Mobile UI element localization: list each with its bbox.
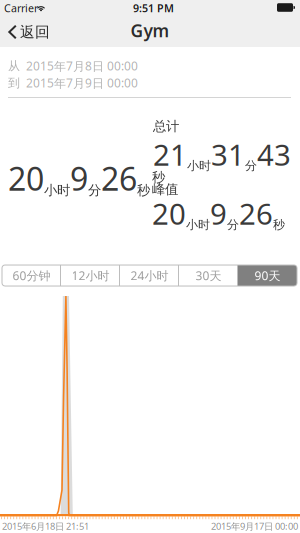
staticText: 峰值 <box>152 181 178 197</box>
staticText: 从 <box>8 59 20 73</box>
staticText: 43 <box>257 135 291 174</box>
staticText: 小时 <box>44 182 70 198</box>
staticText: 秒 <box>152 169 165 185</box>
button[interactable]: 24小时 <box>120 265 179 286</box>
staticText: 小时 <box>186 217 210 232</box>
staticText: 21 <box>153 135 187 174</box>
staticText: 返回 <box>20 23 50 41</box>
button[interactable]: 90天 <box>238 265 297 286</box>
staticText: Gym <box>130 19 169 42</box>
staticText: 秒 <box>137 182 150 198</box>
staticText: 总计 <box>153 118 179 134</box>
button[interactable]: 返回 <box>2 19 60 45</box>
staticText: 分 <box>245 158 257 173</box>
staticText: 20 <box>152 194 186 233</box>
staticText: 30天 <box>195 267 221 283</box>
button[interactable]: 30天 <box>179 265 238 286</box>
staticText: 2015年6月18日 21:51 <box>2 520 89 532</box>
staticText: 小时 <box>187 158 211 173</box>
staticText: 9 <box>210 194 227 233</box>
button[interactable]: 12小时 <box>61 265 120 286</box>
staticText: 到 <box>8 76 20 90</box>
button[interactable]: 60分钟 <box>2 265 61 286</box>
staticText: 分 <box>88 182 101 198</box>
staticText: 24小时 <box>130 267 168 283</box>
staticText: 2015年7月9日 00:00 <box>26 75 138 91</box>
staticText: 60分钟 <box>12 267 50 283</box>
staticText: 分 <box>227 217 239 232</box>
staticText: 2015年9月17日 00:00 <box>211 520 298 532</box>
staticText: Carrier <box>4 1 38 15</box>
staticText: 秒 <box>273 217 285 232</box>
staticText: 31 <box>211 135 245 174</box>
staticText: 90天 <box>254 267 280 283</box>
staticText: 2015年7月8日 00:00 <box>26 58 138 74</box>
staticText: 26 <box>239 194 273 233</box>
staticText: 12小时 <box>71 267 109 283</box>
staticText: 20 <box>8 157 44 199</box>
staticText: 26 <box>101 157 137 199</box>
staticText: 9 <box>70 157 88 199</box>
staticText: 9:51 PM <box>133 1 174 15</box>
